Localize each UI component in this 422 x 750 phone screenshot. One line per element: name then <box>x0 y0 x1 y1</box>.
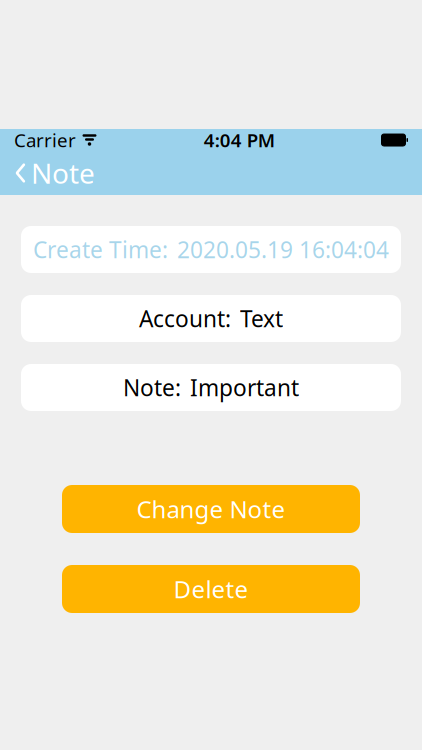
staticText: 2020.05.19 16:04:04 <box>177 234 389 264</box>
button[interactable]: Delete <box>62 565 360 613</box>
button[interactable]: Change Note <box>62 485 360 533</box>
staticText: Account: <box>139 303 231 333</box>
staticText: Delete <box>173 573 248 605</box>
staticText: 4:04 PM <box>204 128 275 152</box>
staticText: Change Note <box>136 493 285 525</box>
staticText: Create Time: <box>33 234 168 264</box>
button[interactable]: Back to Note <box>0 151 105 195</box>
staticText: Important <box>190 372 299 402</box>
staticText: Note: <box>123 372 181 402</box>
staticText: Carrier <box>14 128 76 152</box>
staticText: Text <box>240 303 283 333</box>
staticText: Note <box>31 154 95 192</box>
